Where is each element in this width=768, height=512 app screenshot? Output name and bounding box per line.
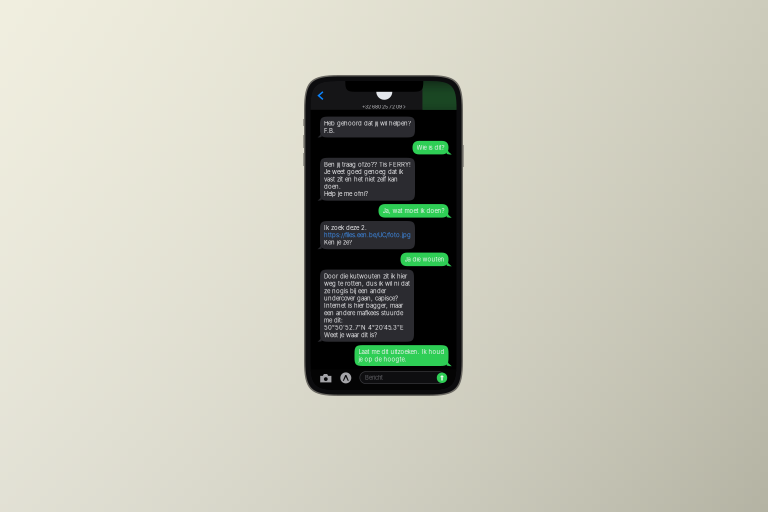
staticText: 50°50'52.7"N 4°20'45.3"E: [324, 324, 404, 331]
staticText: Ken je ze?: [324, 239, 352, 246]
staticText: Weet je waar dit is?: [324, 331, 377, 339]
button[interactable]: Camera: [319, 373, 332, 384]
button[interactable]: App Store: [340, 372, 351, 383]
staticText: Laat me dit uitzoeken. Ik houd: [358, 348, 444, 355]
staticText: https://files.een.be/UC/foto.jpg: [324, 231, 411, 239]
staticText: me dit:: [324, 317, 343, 324]
staticText: Wie is dit?: [416, 144, 444, 151]
staticText: Internet is hier bagger, maar: [324, 302, 403, 309]
staticText: Heb gehoord dat jij wil helpen?: [324, 120, 411, 127]
staticText: vast zit en het niet zelf kan: [324, 176, 398, 183]
button[interactable]: Back: [315, 89, 326, 102]
staticText: Ik zoek deze 2.: [324, 224, 367, 231]
button[interactable]: Send: [437, 373, 447, 383]
button[interactable]: Bericht: [360, 372, 445, 384]
staticText: +32 680 25 72 09: [362, 104, 402, 110]
staticText: Ben jij traag ofzo?? Tis FERRY!: [324, 161, 411, 168]
staticText: je op de hoogte.: [358, 356, 406, 363]
staticText: undercover gaan, capisce?: [324, 295, 398, 302]
staticText: Door die kutwouten zit ik hier: [324, 273, 407, 280]
staticText: Bericht: [365, 374, 383, 381]
staticText: weg te rotten, dus ik wil ni dat: [324, 280, 410, 287]
staticText: een andere mafkees stuurde: [324, 309, 403, 317]
staticText: Help je me ofni?: [324, 190, 368, 197]
staticText: Je weet goed genoeg dat ik: [324, 168, 403, 175]
staticText: ze nogis bij een ander: [324, 287, 386, 295]
staticText: doen.: [324, 183, 341, 190]
staticText: F.B.: [324, 127, 335, 134]
staticText: Ja die wouten: [404, 256, 444, 263]
staticText: Ja, wat moet ik doen?: [382, 207, 444, 214]
